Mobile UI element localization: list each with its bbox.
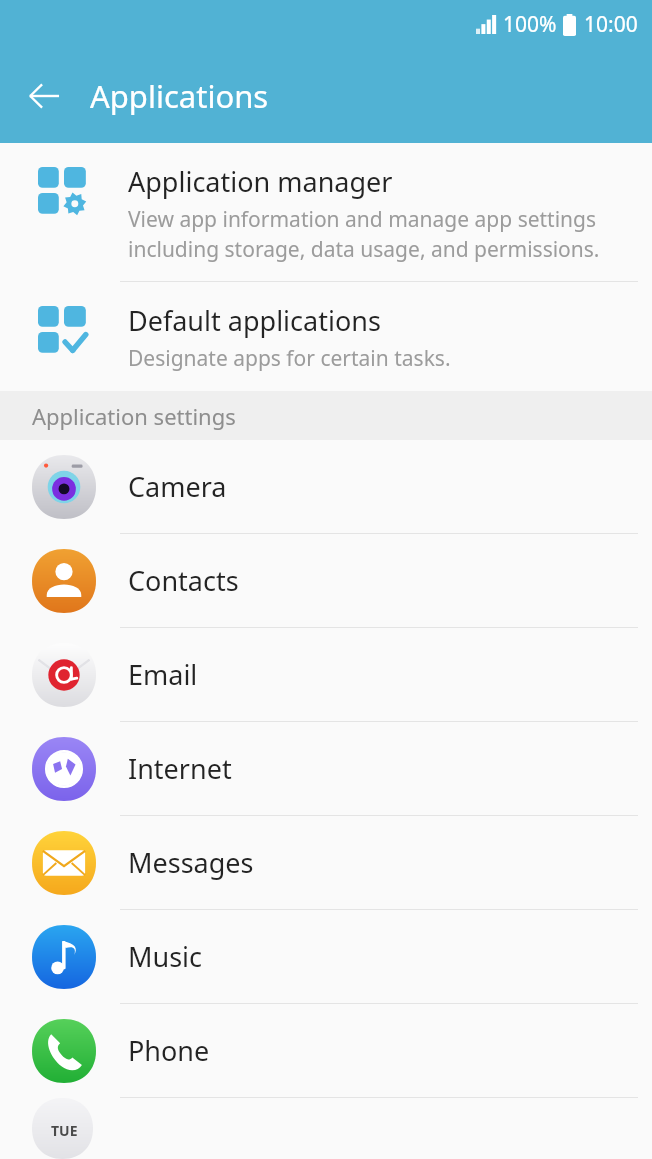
staticText: 10:00 bbox=[584, 10, 638, 39]
button[interactable]: Music bbox=[0, 910, 652, 1004]
button[interactable]: Camera bbox=[0, 440, 652, 534]
staticText: Contacts bbox=[128, 562, 239, 599]
staticText: Application settings bbox=[32, 401, 236, 431]
button[interactable]: Back bbox=[12, 64, 76, 128]
button[interactable]: Contacts bbox=[0, 534, 652, 628]
staticText: 100% bbox=[503, 10, 557, 39]
staticText: View app information and manage app sett… bbox=[128, 205, 634, 263]
staticText: Application manager bbox=[128, 163, 393, 200]
button[interactable]: Internet bbox=[0, 722, 652, 816]
staticText: Designate apps for certain tasks. bbox=[128, 344, 451, 373]
staticText: Music bbox=[128, 938, 203, 975]
staticText: Applications bbox=[90, 75, 269, 117]
staticText: TUE bbox=[51, 1121, 78, 1140]
staticText: Camera bbox=[128, 468, 227, 505]
button[interactable]: Default applications bbox=[0, 282, 652, 391]
button[interactable]: Email bbox=[0, 628, 652, 722]
button[interactable]: Application manager bbox=[0, 143, 652, 282]
staticText: Email bbox=[128, 656, 198, 693]
button[interactable]: Messages bbox=[0, 816, 652, 910]
staticText: Internet bbox=[128, 750, 232, 787]
button[interactable]: Phone bbox=[0, 1004, 652, 1098]
staticText: Messages bbox=[128, 844, 254, 881]
staticText: Default applications bbox=[128, 302, 381, 339]
staticText: Phone bbox=[128, 1032, 210, 1069]
